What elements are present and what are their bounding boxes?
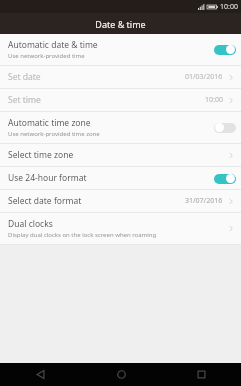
- button[interactable]: Toggle off: [214, 122, 236, 133]
- button[interactable]: Automatic time zone: [0, 112, 241, 143]
- staticText: 01/03/2016: [185, 72, 223, 82]
- button[interactable]: Toggle on: [214, 44, 236, 55]
- button[interactable]: Select time zone: [0, 144, 241, 166]
- button[interactable]: Toggle on: [214, 173, 236, 184]
- staticText: Select time zone: [8, 149, 74, 161]
- staticText: Display dual clocks on the lock screen w…: [8, 231, 157, 239]
- button[interactable]: Set time: [0, 89, 241, 111]
- staticText: Use 24-hour format: [8, 172, 87, 184]
- button[interactable]: Automatic date & time: [0, 34, 241, 65]
- staticText: Select date format: [8, 195, 82, 207]
- staticText: Automatic date & time: [8, 39, 98, 51]
- staticText: Use network-provided time: [8, 52, 85, 60]
- button[interactable]: Set date: [0, 66, 241, 88]
- staticText: 10:00: [205, 95, 223, 105]
- staticText: 10:00: [220, 2, 238, 12]
- staticText: Automatic time zone: [8, 117, 91, 129]
- staticText: Dual clocks: [8, 218, 53, 230]
- button[interactable]: Select date format: [0, 190, 241, 212]
- staticText: Set time: [8, 94, 41, 106]
- staticText: Date & time: [95, 18, 146, 30]
- button[interactable]: Use 24-hour format: [0, 167, 241, 189]
- staticText: 31/07/2016: [185, 196, 223, 206]
- button[interactable]: Back: [0, 363, 81, 386]
- button[interactable]: Recents: [161, 363, 241, 386]
- button[interactable]: Dual clocks: [0, 213, 241, 244]
- staticText: Set date: [8, 71, 41, 83]
- staticText: Use network-provided time zone: [8, 130, 100, 138]
- button[interactable]: Home: [81, 363, 161, 386]
